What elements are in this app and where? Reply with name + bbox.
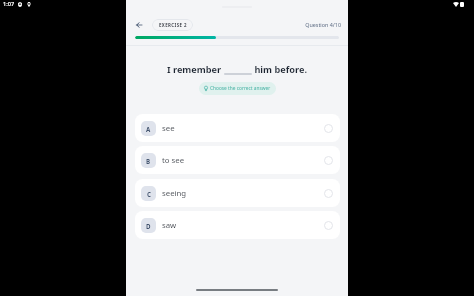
button[interactable]: B	[135, 146, 340, 174]
staticText: B	[146, 157, 151, 165]
staticText: Question 4/10	[305, 21, 341, 28]
staticText: I remember	[167, 63, 224, 76]
staticText: A	[146, 125, 151, 133]
button[interactable]: C	[135, 179, 340, 207]
staticText: to see	[162, 155, 185, 166]
button[interactable]: Choose the correct answer	[199, 82, 276, 95]
staticText: him before.	[252, 63, 308, 76]
staticText: 1:07	[3, 0, 15, 8]
button[interactable]: A	[135, 114, 340, 142]
staticText: saw	[162, 220, 177, 231]
button[interactable]: Back	[131, 17, 147, 33]
staticText: seeing	[162, 188, 187, 199]
staticText: EXERCISE 2	[159, 22, 187, 28]
button[interactable]: D	[135, 211, 340, 239]
staticText: Choose the correct answer	[210, 85, 271, 92]
staticText: D	[146, 222, 151, 230]
button[interactable]: EXERCISE 2	[152, 19, 193, 31]
staticText: C	[147, 190, 151, 198]
staticText: see	[162, 123, 175, 134]
